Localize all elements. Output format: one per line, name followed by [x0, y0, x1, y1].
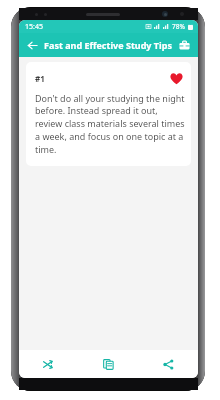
button[interactable]: Copy	[78, 350, 138, 378]
button[interactable]: Back	[22, 35, 42, 55]
button[interactable]: Shuffle	[19, 350, 78, 378]
staticText: 15:45	[25, 22, 43, 32]
staticText: 78%	[172, 22, 185, 31]
staticText: Don't do all your studying the night bef…	[35, 92, 185, 156]
staticText: Fast and Effective Study Tips	[44, 39, 172, 51]
button[interactable]: #1	[26, 62, 191, 166]
button[interactable]: Share	[138, 350, 198, 378]
staticText: #1	[35, 73, 167, 84]
button[interactable]: Toolbox	[174, 35, 194, 55]
button[interactable]: Favorite	[167, 69, 185, 87]
